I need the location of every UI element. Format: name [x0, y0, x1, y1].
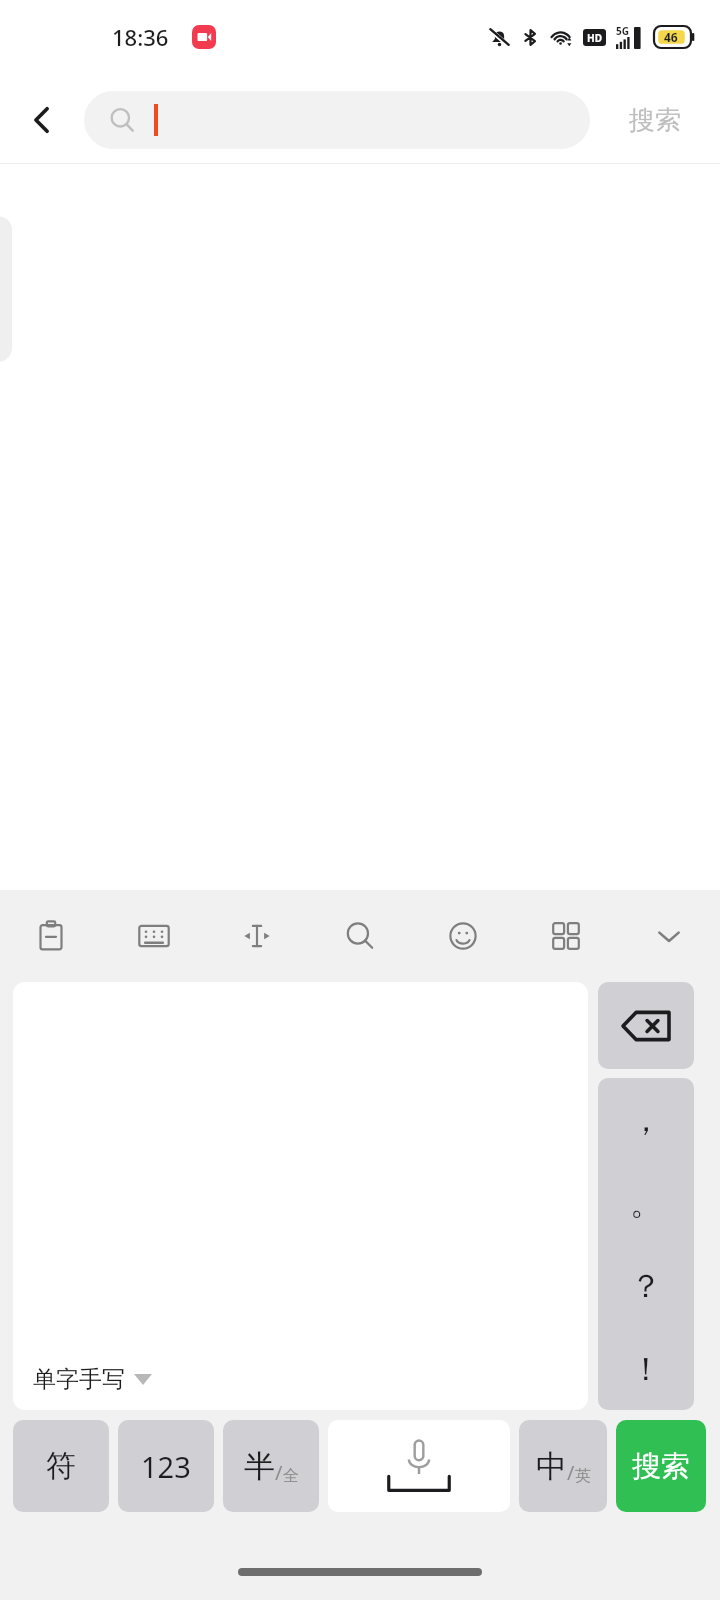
button[interactable]: 单字手写	[13, 982, 588, 1410]
button[interactable]: 123	[118, 1420, 214, 1512]
button[interactable]: Hide keyboard	[617, 890, 720, 982]
staticText: 搜索	[629, 104, 681, 137]
staticText: 符	[46, 1447, 76, 1485]
staticText: 46	[664, 29, 678, 45]
button[interactable]: Space and voice input	[328, 1420, 510, 1512]
button[interactable]: 半	[223, 1420, 319, 1512]
button[interactable]: Move cursor	[205, 890, 308, 982]
staticText: 中	[536, 1447, 567, 1486]
button[interactable]: Back	[0, 76, 84, 164]
staticText: 。	[630, 1183, 662, 1223]
staticText: 单字手写	[33, 1365, 125, 1394]
staticText: /	[567, 1459, 575, 1486]
staticText: 英	[575, 1466, 591, 1486]
staticText: ，	[630, 1100, 662, 1140]
button[interactable]: 搜索	[616, 1420, 706, 1512]
staticText: 半	[244, 1447, 275, 1486]
button[interactable]	[0, 216, 12, 362]
button[interactable]: Keyboard layout	[102, 890, 205, 982]
button[interactable]: 搜索	[590, 76, 720, 164]
button[interactable]: 符	[13, 1420, 109, 1512]
button[interactable]: Search	[308, 890, 411, 982]
staticText: 123	[141, 1447, 191, 1486]
staticText: ！	[630, 1349, 662, 1389]
staticText: 全	[283, 1466, 299, 1486]
staticText: HD	[587, 31, 602, 45]
staticText: /	[275, 1459, 283, 1486]
staticText: 搜索	[632, 1448, 690, 1485]
button[interactable]: ，	[598, 1078, 694, 1410]
button[interactable]: 中	[519, 1420, 607, 1512]
button[interactable]	[84, 91, 590, 149]
button[interactable]: Backspace	[598, 982, 694, 1069]
staticText: ？	[630, 1266, 662, 1306]
button[interactable]: More tools	[514, 890, 617, 982]
button[interactable]: Clipboard	[0, 890, 102, 982]
staticText: 5G	[616, 24, 629, 38]
staticText: 18:36	[112, 22, 169, 52]
button[interactable]: Emoji	[411, 890, 514, 982]
